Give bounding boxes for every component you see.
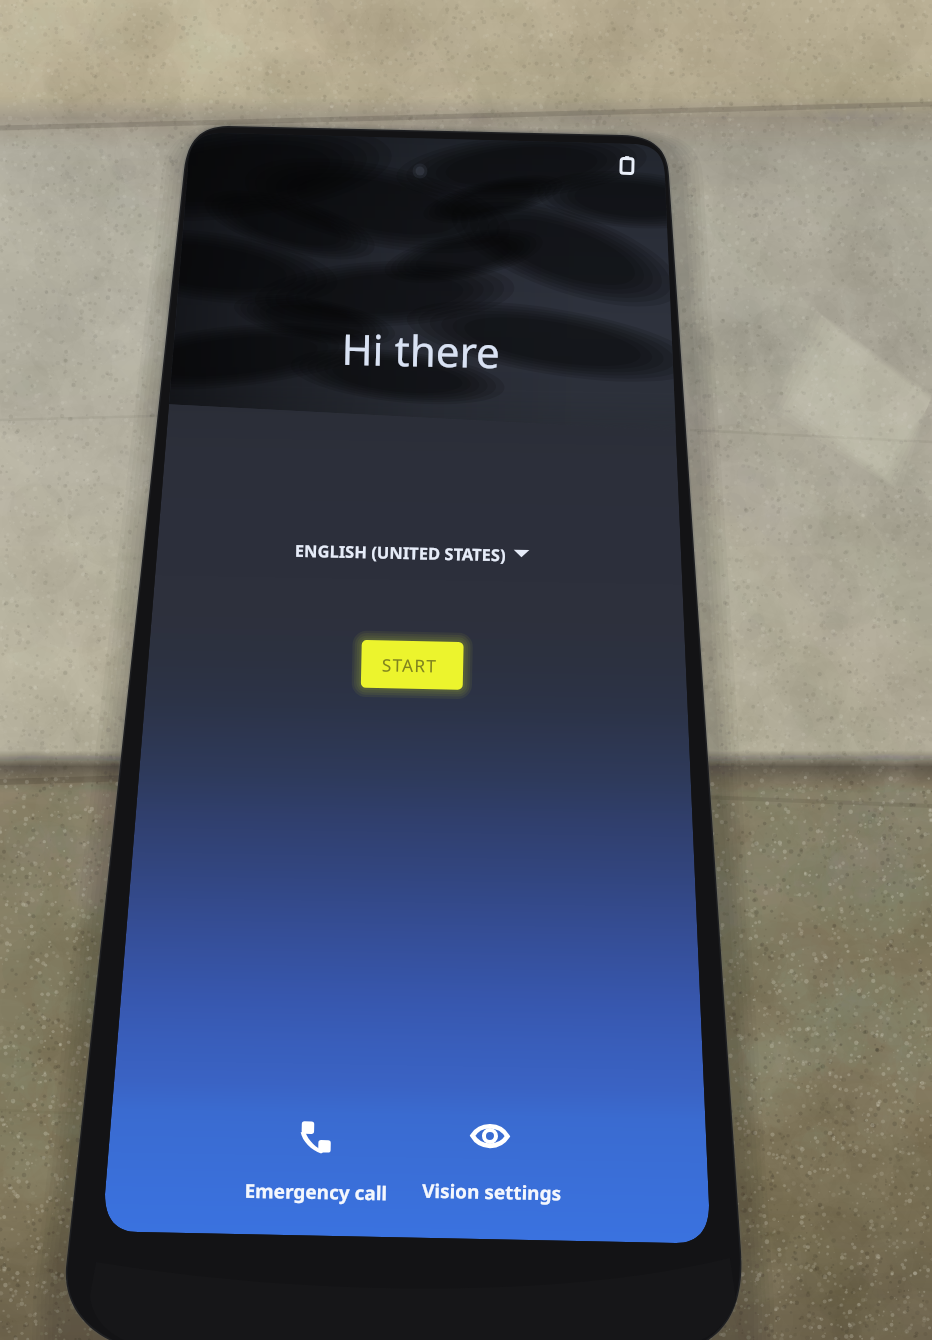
button[interactable]: Start <box>361 640 464 690</box>
button[interactable]: Emergency call <box>251 1104 380 1216</box>
button[interactable]: Vision settings <box>426 1108 559 1220</box>
button[interactable]: English (United States), change language <box>282 527 540 578</box>
